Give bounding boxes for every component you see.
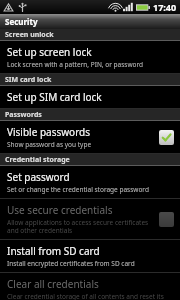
staticText: Clear credential storage of all contents…	[7, 292, 174, 296]
button[interactable]: Use secure credentials	[0, 199, 180, 239]
button[interactable]: Visible passwords	[0, 121, 180, 153]
staticText: Credential storage	[5, 155, 70, 165]
staticText: Install encrypted certificates from SD c…	[7, 259, 135, 268]
staticText: Set up SIM card lock	[7, 90, 102, 104]
staticText: Passwords	[5, 110, 42, 120]
staticText: Visible passwords	[7, 125, 91, 139]
staticText: Install from SD card	[7, 244, 100, 258]
button[interactable]: Checked	[159, 130, 174, 145]
staticText: Clear all credentials	[7, 277, 99, 291]
button[interactable]: Install from SD card	[0, 240, 180, 272]
staticText: Set up screen lock	[7, 45, 92, 59]
staticText: 17:40	[153, 1, 177, 13]
button[interactable]: Set password	[0, 166, 180, 198]
button[interactable]: Clear all credentials	[0, 273, 180, 300]
staticText: Set password	[7, 170, 70, 184]
button[interactable]: Unchecked	[159, 212, 174, 227]
button[interactable]: Set up SIM card lock	[0, 86, 180, 108]
staticText: Security	[5, 16, 38, 27]
staticText: Use secure credentials	[7, 203, 113, 217]
staticText: Set or change the credential storage pas…	[7, 185, 149, 194]
button[interactable]: Set up screen lock	[0, 41, 180, 73]
staticText: Lock screen with a pattern, PIN, or pass…	[7, 60, 144, 69]
staticText: Show password as you type	[7, 140, 92, 149]
staticText: Allow applications to access secure cert…	[7, 218, 154, 235]
staticText: Screen unlock	[5, 30, 54, 40]
staticText: SIM card lock	[5, 75, 52, 85]
